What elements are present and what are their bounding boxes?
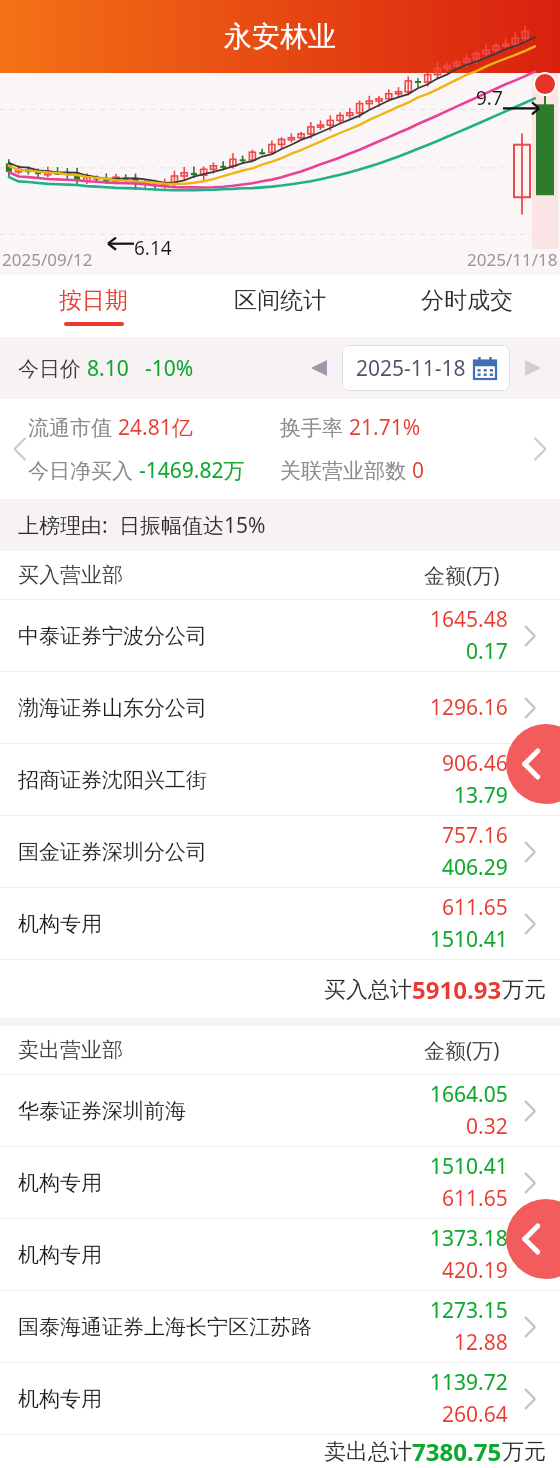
staticText: 买入营业部 — [18, 562, 123, 588]
staticText: 611.65 — [442, 893, 508, 922]
button[interactable]: 国泰海通证券上海长宁区江苏路 — [0, 1291, 560, 1362]
staticText: 420.19 — [442, 1256, 508, 1285]
staticText: 13.79 — [454, 781, 508, 810]
staticText: 机构专用 — [18, 1170, 102, 1196]
staticText: 1510.41 — [430, 1152, 508, 1181]
button[interactable]: Previous page — [506, 724, 560, 804]
staticText: 5910.93 — [412, 973, 502, 1006]
staticText: 1296.16 — [430, 693, 508, 722]
staticText: 9.7 — [476, 85, 503, 111]
staticText: 0.32 — [466, 1112, 508, 1141]
staticText: 国金证券深圳分公司 — [18, 839, 207, 865]
staticText: 12.88 — [454, 1328, 508, 1357]
staticText: 2025-11-18 — [356, 354, 466, 383]
staticText: 21.71% — [349, 413, 421, 442]
staticText: 260.64 — [442, 1400, 508, 1429]
staticText: 国泰海通证券上海长宁区江苏路 — [18, 1314, 312, 1340]
staticText: 金额(万) — [424, 1036, 500, 1065]
staticText: 万元 — [502, 1438, 546, 1466]
button[interactable]: 国金证券深圳分公司 — [0, 816, 560, 887]
staticText: 卖出总计 — [324, 1438, 412, 1466]
staticText: 金额(万) — [424, 561, 500, 590]
staticText: 日振幅值达15% — [119, 511, 266, 540]
button[interactable]: 机构专用 — [0, 888, 560, 959]
button[interactable]: 华泰证券深圳前海 — [0, 1075, 560, 1146]
staticText: 8.10 -10% — [87, 354, 194, 383]
staticText: 1510.41 — [430, 925, 508, 954]
staticText: 机构专用 — [18, 911, 102, 937]
staticText: 7380.75 — [412, 1435, 502, 1468]
button[interactable]: Previous day — [304, 353, 334, 383]
button[interactable]: 2025-11-18 — [342, 345, 510, 391]
staticText: 分时成交 — [421, 286, 513, 315]
staticText: 机构专用 — [18, 1242, 102, 1268]
button[interactable]: 分时成交 — [373, 275, 560, 337]
button[interactable]: 招商证券沈阳兴工街 — [0, 744, 560, 815]
staticText: 1645.48 — [430, 605, 508, 634]
staticText: 1273.15 — [430, 1296, 508, 1325]
staticText: 24.81亿 — [118, 413, 193, 442]
staticText: 换手率 — [280, 413, 349, 442]
staticText: 上榜理由: — [18, 511, 119, 540]
staticText: 区间统计 — [234, 286, 326, 315]
staticText: 渤海证券山东分公司 — [18, 695, 207, 721]
staticText: -1469.82万 — [139, 456, 245, 485]
button[interactable]: 区间统计 — [186, 275, 373, 337]
staticText: 招商证券沈阳兴工街 — [18, 767, 207, 793]
staticText: 1373.18 — [430, 1224, 508, 1253]
staticText: 机构专用 — [18, 1386, 102, 1412]
staticText: 906.46 — [442, 749, 508, 778]
button[interactable]: 按日期 — [0, 275, 186, 337]
staticText: 1664.05 — [430, 1080, 508, 1109]
staticText: 永安林业 — [224, 19, 336, 54]
staticText: 流通市值 — [28, 413, 118, 442]
button[interactable]: 机构专用 — [0, 1363, 560, 1434]
staticText: 6.14 — [134, 235, 172, 261]
button[interactable]: 中泰证券宁波分公司 — [0, 600, 560, 671]
staticText: 757.16 — [442, 821, 508, 850]
staticText: 按日期 — [59, 286, 128, 315]
staticText: 卖出营业部 — [18, 1037, 123, 1063]
staticText: 611.65 — [442, 1184, 508, 1213]
staticText: 买入总计 — [324, 976, 412, 1004]
staticText: 关联营业部数 — [280, 456, 412, 485]
staticText: 万元 — [502, 976, 546, 1004]
staticText: 2025/09/12 — [2, 248, 93, 271]
staticText: 中泰证券宁波分公司 — [18, 623, 207, 649]
staticText: 今日净买入 — [28, 456, 139, 485]
button[interactable]: 渤海证券山东分公司 — [0, 672, 560, 743]
staticText: 华泰证券深圳前海 — [18, 1098, 186, 1124]
staticText: 今日价 — [18, 354, 87, 383]
staticText: 1139.72 — [430, 1368, 508, 1397]
button[interactable]: Previous page — [506, 1199, 560, 1279]
staticText: 406.29 — [442, 853, 508, 882]
button[interactable]: 机构专用 — [0, 1219, 560, 1290]
staticText: 0 — [412, 456, 425, 485]
staticText: 2025/11/18 — [467, 248, 558, 271]
staticText: 0.17 — [466, 637, 508, 666]
button[interactable]: 机构专用 — [0, 1147, 560, 1218]
button[interactable]: Next day — [518, 353, 548, 383]
